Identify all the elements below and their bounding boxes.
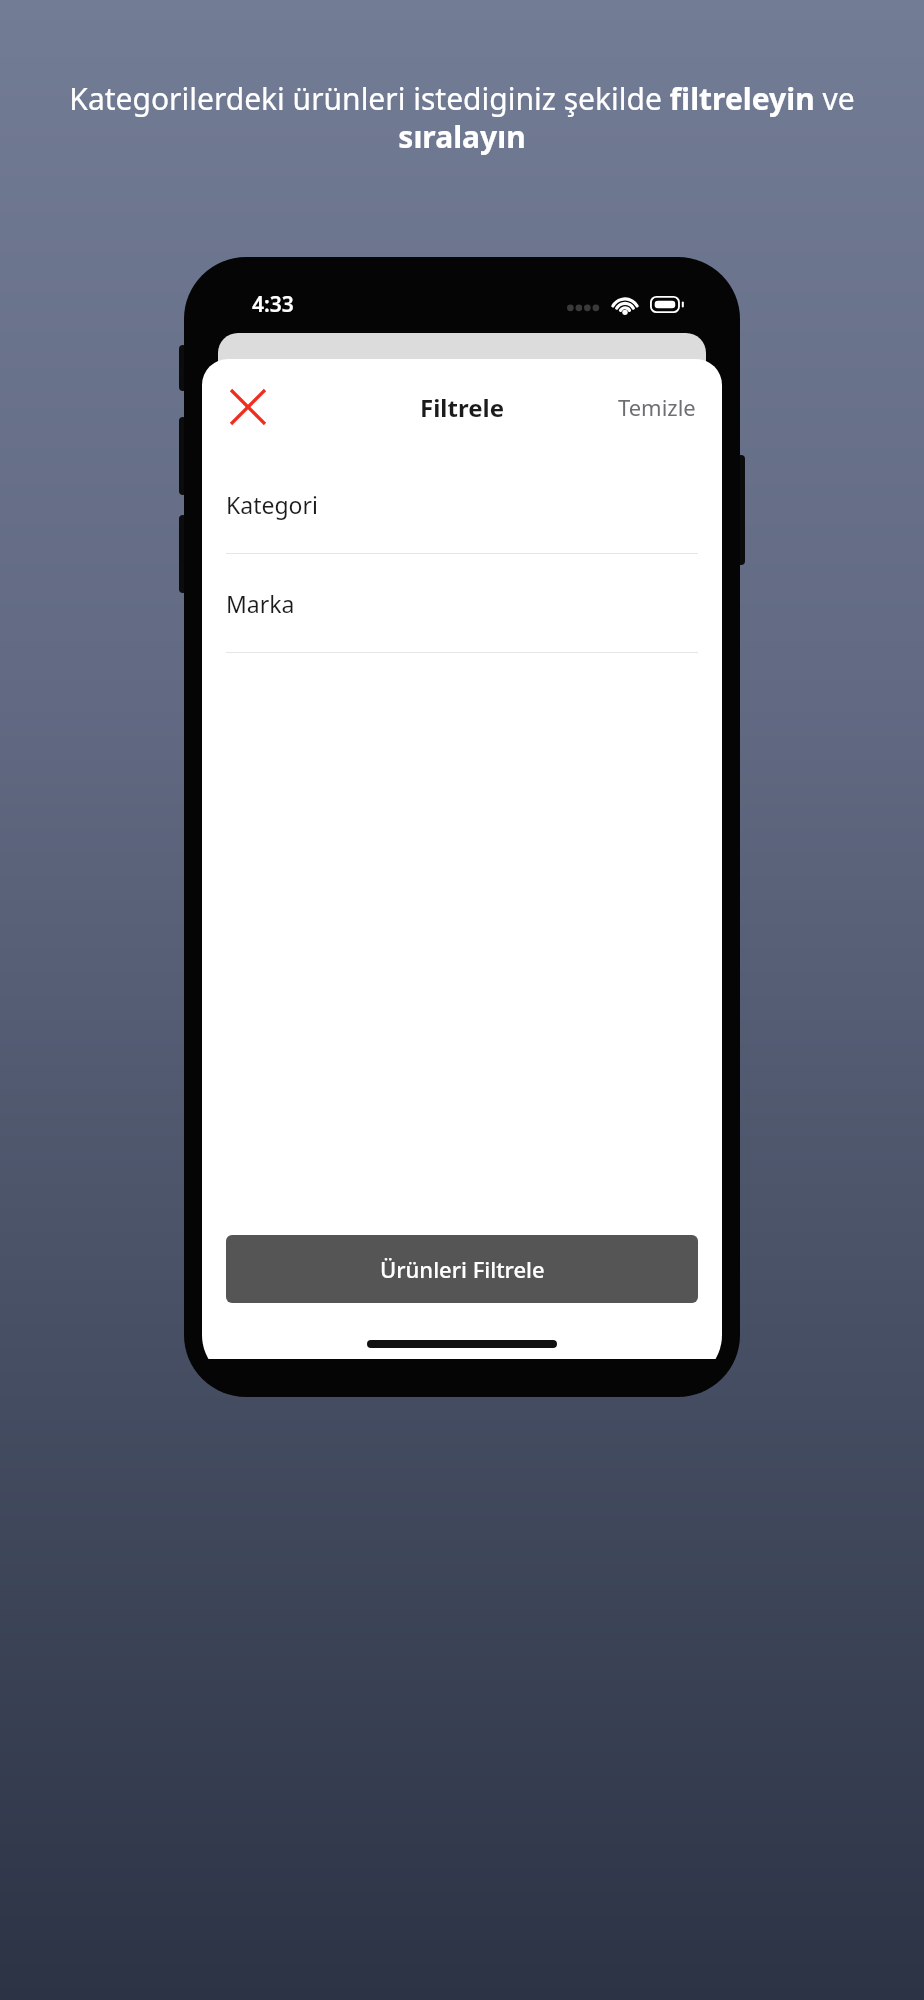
- staticText: Filtrele: [420, 391, 504, 424]
- button[interactable]: Kategori: [202, 455, 722, 553]
- staticText: Marka: [226, 588, 295, 619]
- staticText: Ürünleri Filtrele: [380, 1254, 545, 1284]
- button[interactable]: Temizle: [610, 382, 704, 432]
- staticText: 4:33: [252, 290, 294, 319]
- staticText: Kategori: [226, 489, 318, 520]
- staticText: Kategorilerdeki ürünleri istediginiz şek…: [40, 78, 884, 157]
- button[interactable]: Ürünleri Filtrele: [226, 1235, 698, 1303]
- button[interactable]: Marka: [202, 554, 722, 652]
- button[interactable]: Kapat: [218, 377, 278, 437]
- staticText: Temizle: [618, 392, 696, 422]
